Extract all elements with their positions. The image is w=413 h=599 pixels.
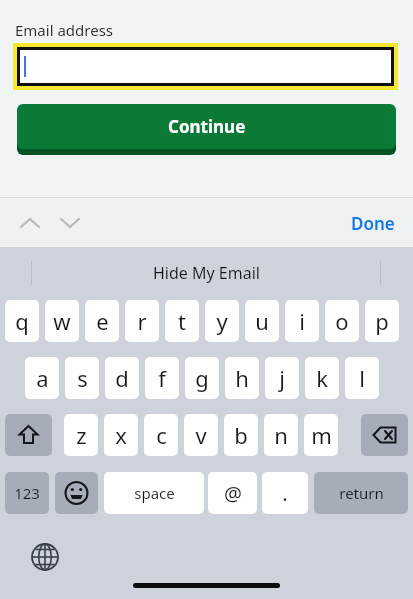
- staticText: f: [158, 363, 166, 393]
- button[interactable]: [20, 50, 391, 83]
- staticText: Hide My Email: [153, 262, 260, 284]
- button[interactable]: p: [365, 300, 399, 342]
- staticText: i: [299, 306, 305, 336]
- button[interactable]: u: [245, 300, 279, 342]
- button[interactable]: z: [64, 414, 98, 456]
- staticText: e: [96, 306, 109, 336]
- staticText: d: [115, 363, 129, 393]
- button[interactable]: i: [285, 300, 319, 342]
- button[interactable]: s: [65, 357, 99, 399]
- button[interactable]: n: [264, 414, 298, 456]
- button[interactable]: g: [185, 357, 219, 399]
- button[interactable]: Change keyboard: [28, 540, 62, 574]
- button[interactable]: Done: [345, 205, 401, 241]
- button[interactable]: e: [85, 300, 119, 342]
- staticText: a: [36, 363, 49, 393]
- button[interactable]: w: [45, 300, 79, 342]
- button[interactable]: Next field: [54, 207, 86, 239]
- button[interactable]: l: [345, 357, 379, 399]
- staticText: space: [134, 483, 175, 503]
- button[interactable]: f: [145, 357, 179, 399]
- button[interactable]: .: [262, 472, 308, 514]
- button[interactable]: Emoji: [55, 472, 98, 514]
- staticText: t: [178, 306, 186, 336]
- button[interactable]: o: [325, 300, 359, 342]
- staticText: n: [274, 420, 288, 450]
- button[interactable]: t: [165, 300, 199, 342]
- staticText: c: [156, 420, 167, 450]
- staticText: u: [255, 306, 269, 336]
- button[interactable]: @: [208, 472, 257, 514]
- staticText: o: [335, 306, 349, 336]
- button[interactable]: a: [25, 357, 59, 399]
- button[interactable]: x: [104, 414, 138, 456]
- staticText: Done: [351, 212, 395, 235]
- button[interactable]: h: [225, 357, 259, 399]
- staticText: @: [224, 480, 242, 507]
- button[interactable]: 123: [5, 472, 49, 514]
- staticText: q: [15, 306, 29, 336]
- staticText: l: [359, 363, 365, 393]
- button[interactable]: space: [104, 472, 204, 514]
- staticText: Email address: [15, 20, 114, 40]
- button[interactable]: r: [125, 300, 159, 342]
- staticText: s: [77, 363, 88, 393]
- button[interactable]: v: [184, 414, 218, 456]
- button[interactable]: Hide My Email: [90, 258, 323, 288]
- staticText: Continue: [168, 115, 246, 138]
- button[interactable]: b: [224, 414, 258, 456]
- staticText: g: [195, 363, 209, 393]
- button[interactable]: Backspace: [361, 414, 408, 456]
- staticText: j: [279, 363, 285, 393]
- staticText: k: [316, 363, 328, 393]
- button[interactable]: Shift: [5, 414, 52, 456]
- staticText: y: [216, 306, 228, 336]
- staticText: h: [235, 363, 249, 393]
- staticText: w: [53, 306, 71, 336]
- staticText: 123: [14, 483, 40, 503]
- staticText: z: [76, 420, 87, 450]
- staticText: v: [195, 420, 207, 450]
- staticText: r: [137, 306, 147, 336]
- button[interactable]: Previous field: [14, 207, 46, 239]
- button[interactable]: c: [144, 414, 178, 456]
- staticText: m: [311, 420, 332, 450]
- button[interactable]: m: [304, 414, 338, 456]
- staticText: b: [234, 420, 248, 450]
- staticText: return: [339, 483, 384, 503]
- staticText: .: [282, 480, 288, 507]
- staticText: p: [375, 306, 389, 336]
- button[interactable]: k: [305, 357, 339, 399]
- staticText: x: [115, 420, 127, 450]
- button[interactable]: y: [205, 300, 239, 342]
- button[interactable]: j: [265, 357, 299, 399]
- button[interactable]: Continue: [17, 104, 396, 149]
- button[interactable]: d: [105, 357, 139, 399]
- button[interactable]: q: [5, 300, 39, 342]
- button[interactable]: return: [314, 472, 408, 514]
